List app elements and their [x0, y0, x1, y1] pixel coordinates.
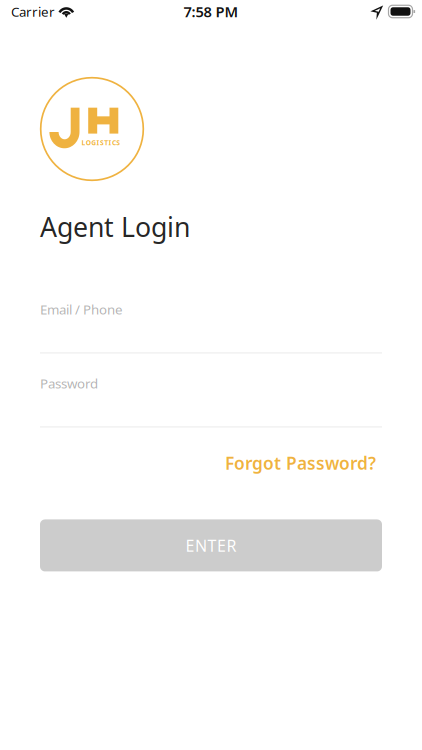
staticText: Agent Login [40, 209, 190, 244]
staticText: Carrier [11, 3, 55, 20]
button[interactable]: ENTER [40, 519, 382, 571]
staticText: 7:58 PM [183, 2, 238, 21]
staticText: ENTER [185, 535, 236, 556]
button[interactable]: Forgot Password? [225, 446, 382, 479]
staticText: LOGISTICS [81, 138, 120, 147]
staticText: Forgot Password? [225, 451, 376, 474]
staticText: Email / Phone [40, 301, 123, 318]
staticText: Password [40, 375, 98, 392]
